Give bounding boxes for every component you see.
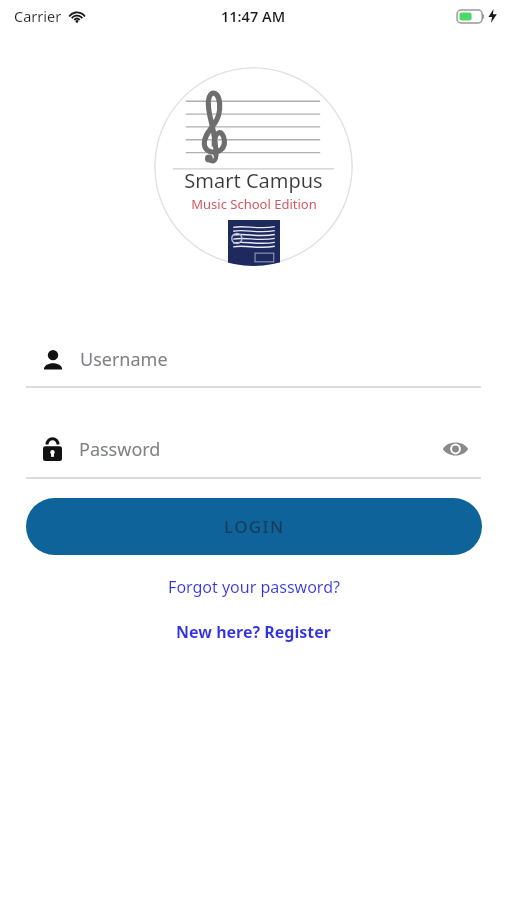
staticText: Forgot your password? — [168, 576, 340, 598]
button[interactable]: New here? Register — [0, 617, 507, 647]
staticText: Password — [79, 437, 161, 462]
staticText: Username — [80, 347, 168, 372]
button[interactable]: Forgot your password? — [0, 572, 507, 602]
button[interactable]: LOGIN — [26, 498, 482, 555]
staticText: LOGIN — [224, 515, 285, 538]
staticText: Smart Campus — [184, 167, 323, 194]
button[interactable]: Show password — [437, 431, 473, 467]
button[interactable]: Username — [26, 330, 481, 388]
button[interactable]: Password — [26, 420, 481, 478]
staticText: Music School Edition — [191, 195, 317, 213]
staticText: Carrier — [14, 6, 62, 26]
staticText: 11:47 AM — [221, 6, 286, 26]
staticText: New here? Register — [176, 621, 331, 643]
